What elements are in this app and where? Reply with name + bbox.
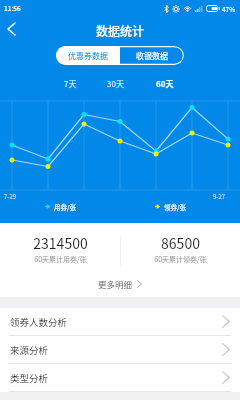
staticText: 86500 [161, 233, 200, 253]
button[interactable]: 30天 [99, 76, 131, 92]
button[interactable]: 7天 [54, 76, 86, 92]
button[interactable]: 60天 [149, 76, 181, 92]
staticText: 9-27 [213, 192, 226, 201]
staticText: 2314500 [33, 233, 88, 253]
button[interactable]: 类型分析 [0, 364, 240, 391]
staticText: 领券/张 [164, 202, 187, 211]
button[interactable]: Back [0, 16, 22, 44]
staticText: 60天 [156, 78, 174, 90]
button[interactable]: 收银数据 [120, 46, 184, 65]
button[interactable]: 更多明细 [0, 276, 240, 297]
staticText: 更多明细 [98, 278, 133, 290]
staticText: 领券人数分析 [10, 315, 68, 329]
staticText: 7-29 [4, 192, 17, 201]
button[interactable]: 优惠券数据 [56, 46, 120, 65]
staticText: 优惠券数据 [68, 50, 108, 62]
staticText: 7天 [64, 78, 77, 90]
staticText: 类型分析 [10, 371, 49, 385]
staticText: 用券/张 [54, 202, 77, 211]
staticText: 60天累计领券/张 [154, 254, 207, 264]
staticText: 11:56 [4, 3, 21, 12]
button[interactable]: 来源分析 [0, 336, 240, 363]
button[interactable]: 领券人数分析 [0, 308, 240, 335]
staticText: 数据统计 [96, 22, 145, 39]
staticText: 30天 [107, 78, 124, 90]
staticText: 收银数据 [136, 50, 168, 62]
staticText: 47% [222, 4, 236, 13]
staticText: 60天累计用券/张 [34, 254, 87, 264]
staticText: 来源分析 [10, 343, 49, 357]
